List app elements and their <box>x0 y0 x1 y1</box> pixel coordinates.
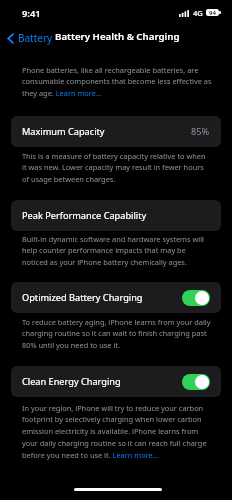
staticText: Optimized Battery Charging <box>22 291 143 304</box>
button[interactable]: Maximum Capacity <box>11 116 221 147</box>
staticText: 94 <box>209 9 216 16</box>
button[interactable]: Clean Energy Charging <box>11 366 221 397</box>
staticText: Peak Performance Capability <box>22 209 147 222</box>
button[interactable]: Back to Battery <box>4 28 56 48</box>
staticText: 9:41 <box>22 7 41 20</box>
button[interactable]: Peak Performance Capability <box>11 200 221 231</box>
button[interactable]: Optimized Battery Charging <box>11 282 221 313</box>
staticText: In your region, iPhone will try to reduc… <box>22 403 212 461</box>
button[interactable]: Toggle Optimized Battery Charging <box>182 290 210 306</box>
staticText: Maximum Capacity <box>22 125 105 138</box>
button[interactable]: Toggle Clean Energy Charging <box>182 374 210 390</box>
staticText: 4G <box>193 8 203 18</box>
staticText: Phone batteries, like all rechargeable b… <box>22 65 212 99</box>
staticText: This is a measure of battery capacity re… <box>22 151 212 185</box>
staticText: To reduce battery aging, iPhone learns f… <box>22 317 212 351</box>
staticText: Clean Energy Charging <box>22 375 121 388</box>
staticText: Battery Health & Charging <box>55 30 180 43</box>
staticText: Battery <box>18 31 53 45</box>
staticText: 85% <box>191 125 210 138</box>
staticText: Built-in dynamic software and hardware s… <box>22 234 212 268</box>
